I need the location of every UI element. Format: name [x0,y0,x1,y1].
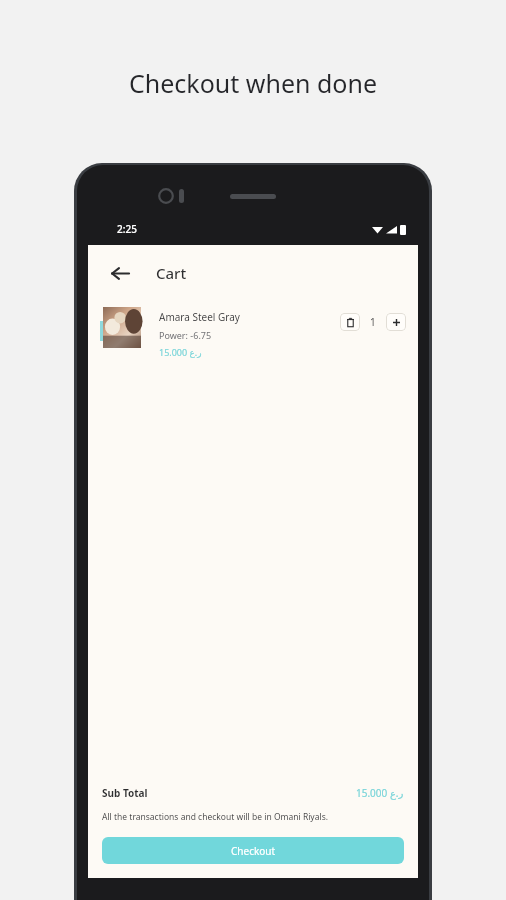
staticText: 15.000 ر.ع [356,786,404,800]
staticText: Power: -6.75 [159,329,212,341]
button[interactable]: Remove item [340,313,360,331]
button[interactable]: Checkout [102,837,404,864]
staticText: 2:25 [117,222,137,236]
staticText: 15.000 ر.ع [159,346,202,358]
staticText: Checkout [231,844,276,858]
staticText: 1 [370,315,376,329]
staticText: Cart [156,263,187,283]
staticText: Sub Total [102,786,148,800]
button[interactable]: Amara Steel Gray [88,301,418,364]
button[interactable]: Increase quantity [386,313,406,331]
staticText: All the transactions and checkout will b… [102,811,329,823]
button[interactable]: Back [104,257,136,289]
staticText: Amara Steel Gray [159,310,240,324]
staticText: Checkout when done [129,66,378,100]
